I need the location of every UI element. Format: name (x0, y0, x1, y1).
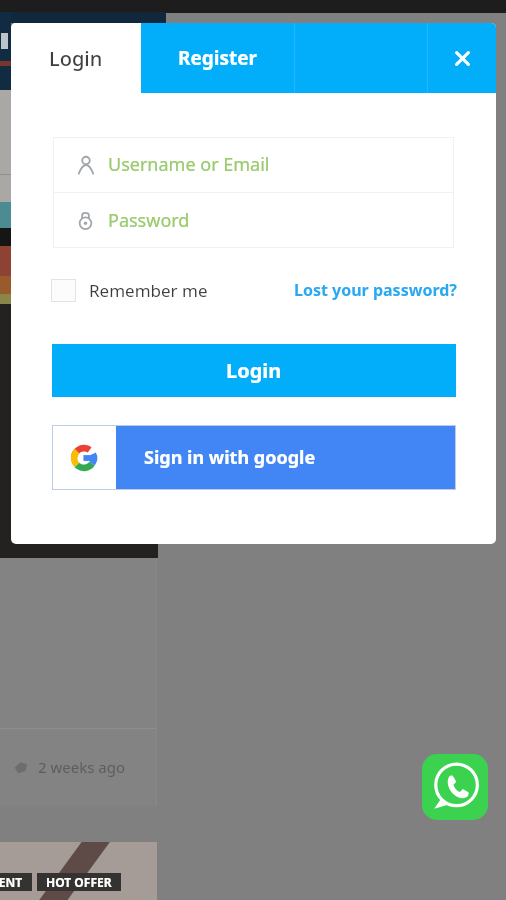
staticText: Login (226, 357, 282, 384)
button[interactable]: Sign in with google (52, 425, 456, 490)
staticText: Register (178, 45, 258, 71)
staticText: Username or Email (108, 152, 270, 177)
button[interactable]: Login (11, 23, 141, 93)
staticText: Remember me (89, 279, 208, 302)
staticText: Login (49, 45, 103, 72)
button[interactable]: Remember me (51, 279, 208, 302)
button[interactable]: Register (141, 23, 294, 93)
button[interactable]: Chat on WhatsApp (422, 754, 488, 820)
button[interactable]: Password (53, 193, 454, 248)
button[interactable]: Close dialog (428, 23, 496, 93)
staticText: Password (108, 208, 190, 233)
staticText: Lost your password? (294, 279, 457, 301)
staticText: Sign in with google (144, 445, 316, 470)
staticText: HOT OFFER (46, 874, 112, 890)
button[interactable]: Login (52, 344, 456, 397)
staticText: RENT (0, 874, 23, 890)
button[interactable]: Username or Email (53, 137, 454, 192)
button[interactable]: Lost your password? (294, 279, 457, 301)
staticText: 2 weeks ago (38, 757, 126, 777)
